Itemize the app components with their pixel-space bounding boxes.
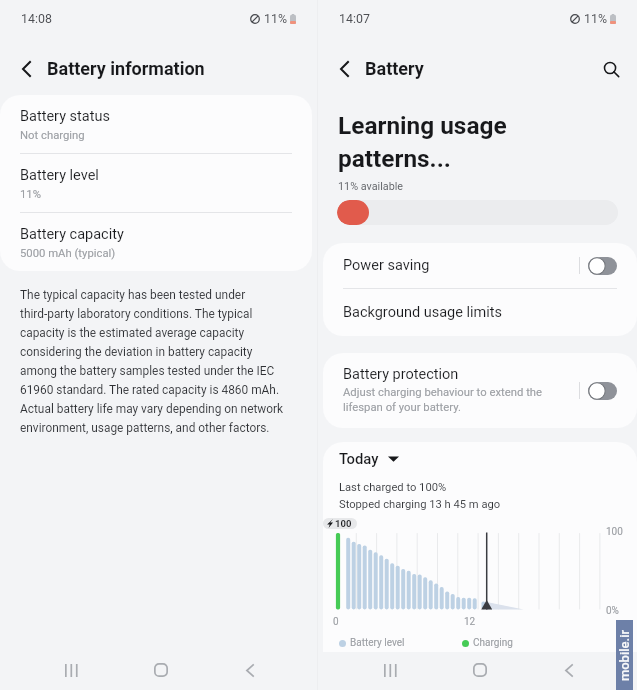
staticText: Last charged to 100% [339,478,447,495]
staticText: Today [339,450,379,467]
button[interactable]: Power saving [323,243,637,288]
staticText: 11% available [338,180,404,193]
button[interactable]: Battery protection [323,353,637,428]
staticText: 12 [464,616,476,628]
staticText: The typical capacity has been tested und… [20,284,288,436]
staticText: 100 [335,518,352,529]
staticText: Battery level [350,637,405,649]
staticText: 0% [606,605,619,617]
staticText: Learning usage patterns... [338,108,507,174]
staticText: 0 [333,616,339,628]
staticText: Not charging [20,127,85,142]
staticText: 100 [606,526,623,538]
button[interactable]: Battery level [0,154,312,212]
staticText: Power saving [343,257,430,274]
button[interactable]: Back [331,56,357,82]
button[interactable]: Back [13,56,39,82]
staticText: 11% [20,186,41,201]
staticText: Battery protection [343,366,459,383]
button[interactable]: Back [538,653,600,687]
staticText: Battery information [47,58,205,79]
staticText: Adjust charging behaviour to extend the … [343,385,543,415]
staticText: Background usage limits [343,304,502,321]
button[interactable]: Home [421,653,538,687]
staticText: 14:07 [339,11,370,26]
button[interactable]: Power saving switch [588,257,617,275]
staticText: 5000 mAh (typical) [20,245,116,260]
button[interactable]: Background usage limits [323,289,637,336]
staticText: Stopped charging 13 h 45 m ago [339,495,501,512]
staticText: Battery [365,58,424,79]
button[interactable]: Recent apps [359,653,421,687]
button[interactable]: Battery protection switch [588,382,617,400]
button[interactable]: Battery status [0,95,312,153]
button[interactable]: Home [102,653,219,687]
button[interactable]: Today [339,450,399,467]
staticText: 11% [264,11,288,26]
staticText: Battery capacity [20,224,124,243]
staticText: Charging [473,637,513,649]
button[interactable]: Search [594,52,628,86]
staticText: Battery level [20,165,99,184]
staticText: mobile.ir [616,621,631,689]
staticText: 11% [584,11,608,26]
button[interactable]: Back [219,653,281,687]
button[interactable]: Recent apps [40,653,102,687]
button[interactable]: Battery capacity [0,213,312,271]
staticText: Battery status [20,106,110,125]
staticText: 14:08 [21,11,52,26]
